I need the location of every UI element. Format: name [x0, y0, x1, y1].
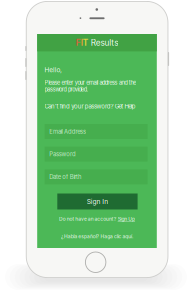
button[interactable]: ¿Habla español? Haga clic aquí.: [37, 233, 157, 240]
staticText: Sign Up: [118, 216, 135, 222]
staticText: Results: [89, 38, 118, 48]
staticText: Please enter your email address and the …: [45, 79, 136, 93]
staticText: Password: [49, 151, 76, 158]
staticText: I: [81, 38, 83, 48]
button[interactable]: Can't find your password? Get Help: [45, 103, 136, 110]
staticText: F: [76, 38, 81, 48]
staticText: Email Address: [49, 128, 86, 135]
button[interactable]: Sign In: [57, 193, 138, 209]
button[interactable]: Password: [45, 147, 148, 162]
button[interactable]: Date of Birth: [45, 169, 148, 184]
button[interactable]: Do not have an account?: [37, 215, 157, 222]
button[interactable]: Email Address: [45, 124, 148, 139]
staticText: Hello,: [45, 66, 62, 74]
staticText: T: [83, 38, 89, 48]
staticText: Sign In: [87, 197, 108, 206]
staticText: ¿Habla español? Haga clic aquí.: [61, 233, 133, 239]
staticText: Can't find your password? Get Help: [45, 103, 136, 110]
staticText: Date of Birth: [49, 173, 81, 180]
staticText: Do not have an account?: [59, 216, 118, 222]
